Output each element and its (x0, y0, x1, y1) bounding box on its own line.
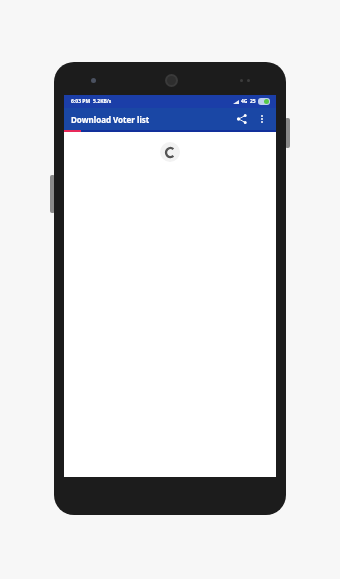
button[interactable]: More options (253, 110, 271, 128)
staticText: 6:03 PM (71, 98, 91, 105)
staticText: 5.2KB/s (93, 98, 112, 105)
staticText: 25 (250, 98, 256, 105)
staticText: Download Voter list (71, 114, 150, 125)
staticText: 4G (241, 98, 248, 105)
button[interactable]: Share (233, 110, 251, 128)
